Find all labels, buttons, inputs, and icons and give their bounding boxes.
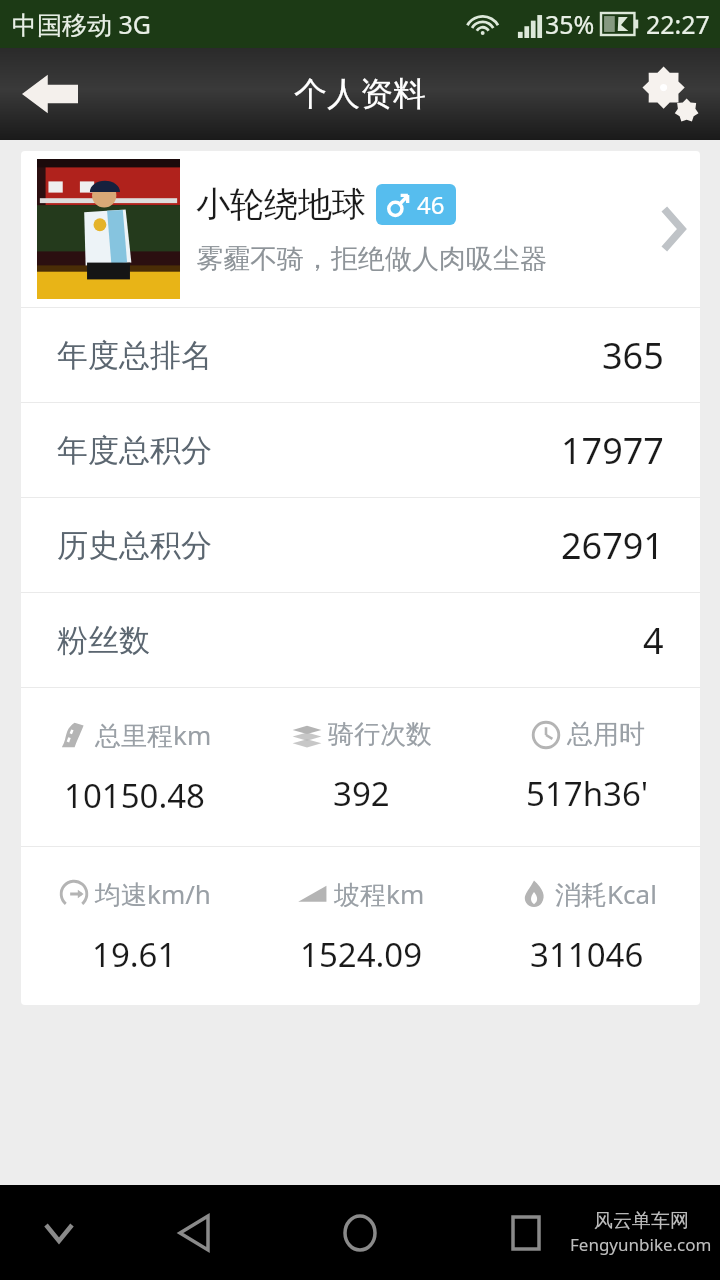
staticText: 17977 — [561, 426, 664, 475]
staticText: 粉丝数 — [57, 621, 150, 660]
button[interactable]: 总用时 — [474, 688, 700, 846]
button[interactable]: 年度总排名 — [21, 308, 700, 402]
staticText: 22:27 — [646, 7, 710, 41]
staticText: 总用时 — [567, 718, 645, 751]
button[interactable]: 小轮绕地球 — [21, 151, 700, 307]
button[interactable]: 坡程km — [248, 847, 474, 1005]
button[interactable]: 总里程km — [21, 688, 248, 846]
staticText: 风云单车网 — [594, 1209, 689, 1233]
staticText: 中国移动 3G — [12, 7, 152, 41]
button[interactable]: 粉丝数 — [21, 593, 700, 687]
staticText: 个人资料 — [294, 73, 426, 115]
staticText: 消耗Kcal — [555, 876, 657, 912]
staticText: 10150.48 — [64, 773, 205, 818]
staticText: 坡程km — [334, 876, 425, 912]
staticText: 4 — [643, 616, 664, 665]
staticText: 311046 — [530, 932, 644, 977]
button[interactable]: Settings — [620, 48, 720, 140]
staticText: 26791 — [561, 521, 664, 570]
staticText: 均速km/h — [95, 876, 211, 912]
staticText: Fengyunbike.com — [570, 1233, 712, 1256]
staticText: 年度总积分 — [57, 431, 212, 470]
button[interactable]: 年度总积分 — [21, 403, 700, 497]
staticText: 小轮绕地球 — [196, 183, 366, 226]
staticText: 历史总积分 — [57, 526, 212, 565]
button[interactable]: Back — [0, 48, 100, 140]
staticText: 雾霾不骑，拒绝做人肉吸尘器 — [196, 242, 547, 276]
staticText: 年度总排名 — [57, 336, 212, 375]
staticText: 46 — [417, 188, 445, 221]
button[interactable]: 均速km/h — [21, 847, 248, 1005]
button[interactable]: 消耗Kcal — [474, 847, 700, 1005]
staticText: 517h36' — [526, 771, 649, 816]
button[interactable]: Back — [148, 1187, 240, 1279]
button[interactable]: 骑行次数 — [248, 688, 474, 846]
button[interactable]: 历史总积分 — [21, 498, 700, 592]
staticText: 1524.09 — [300, 932, 423, 977]
staticText: 骑行次数 — [328, 718, 432, 751]
staticText: 392 — [333, 771, 390, 816]
staticText: 总里程km — [95, 717, 212, 753]
staticText: 19.61 — [92, 932, 177, 977]
button[interactable]: Home — [314, 1187, 406, 1279]
staticText: 35% — [545, 7, 595, 41]
button[interactable]: Recents — [480, 1187, 572, 1279]
staticText: 365 — [602, 331, 664, 380]
button[interactable]: Hide — [20, 1194, 98, 1272]
